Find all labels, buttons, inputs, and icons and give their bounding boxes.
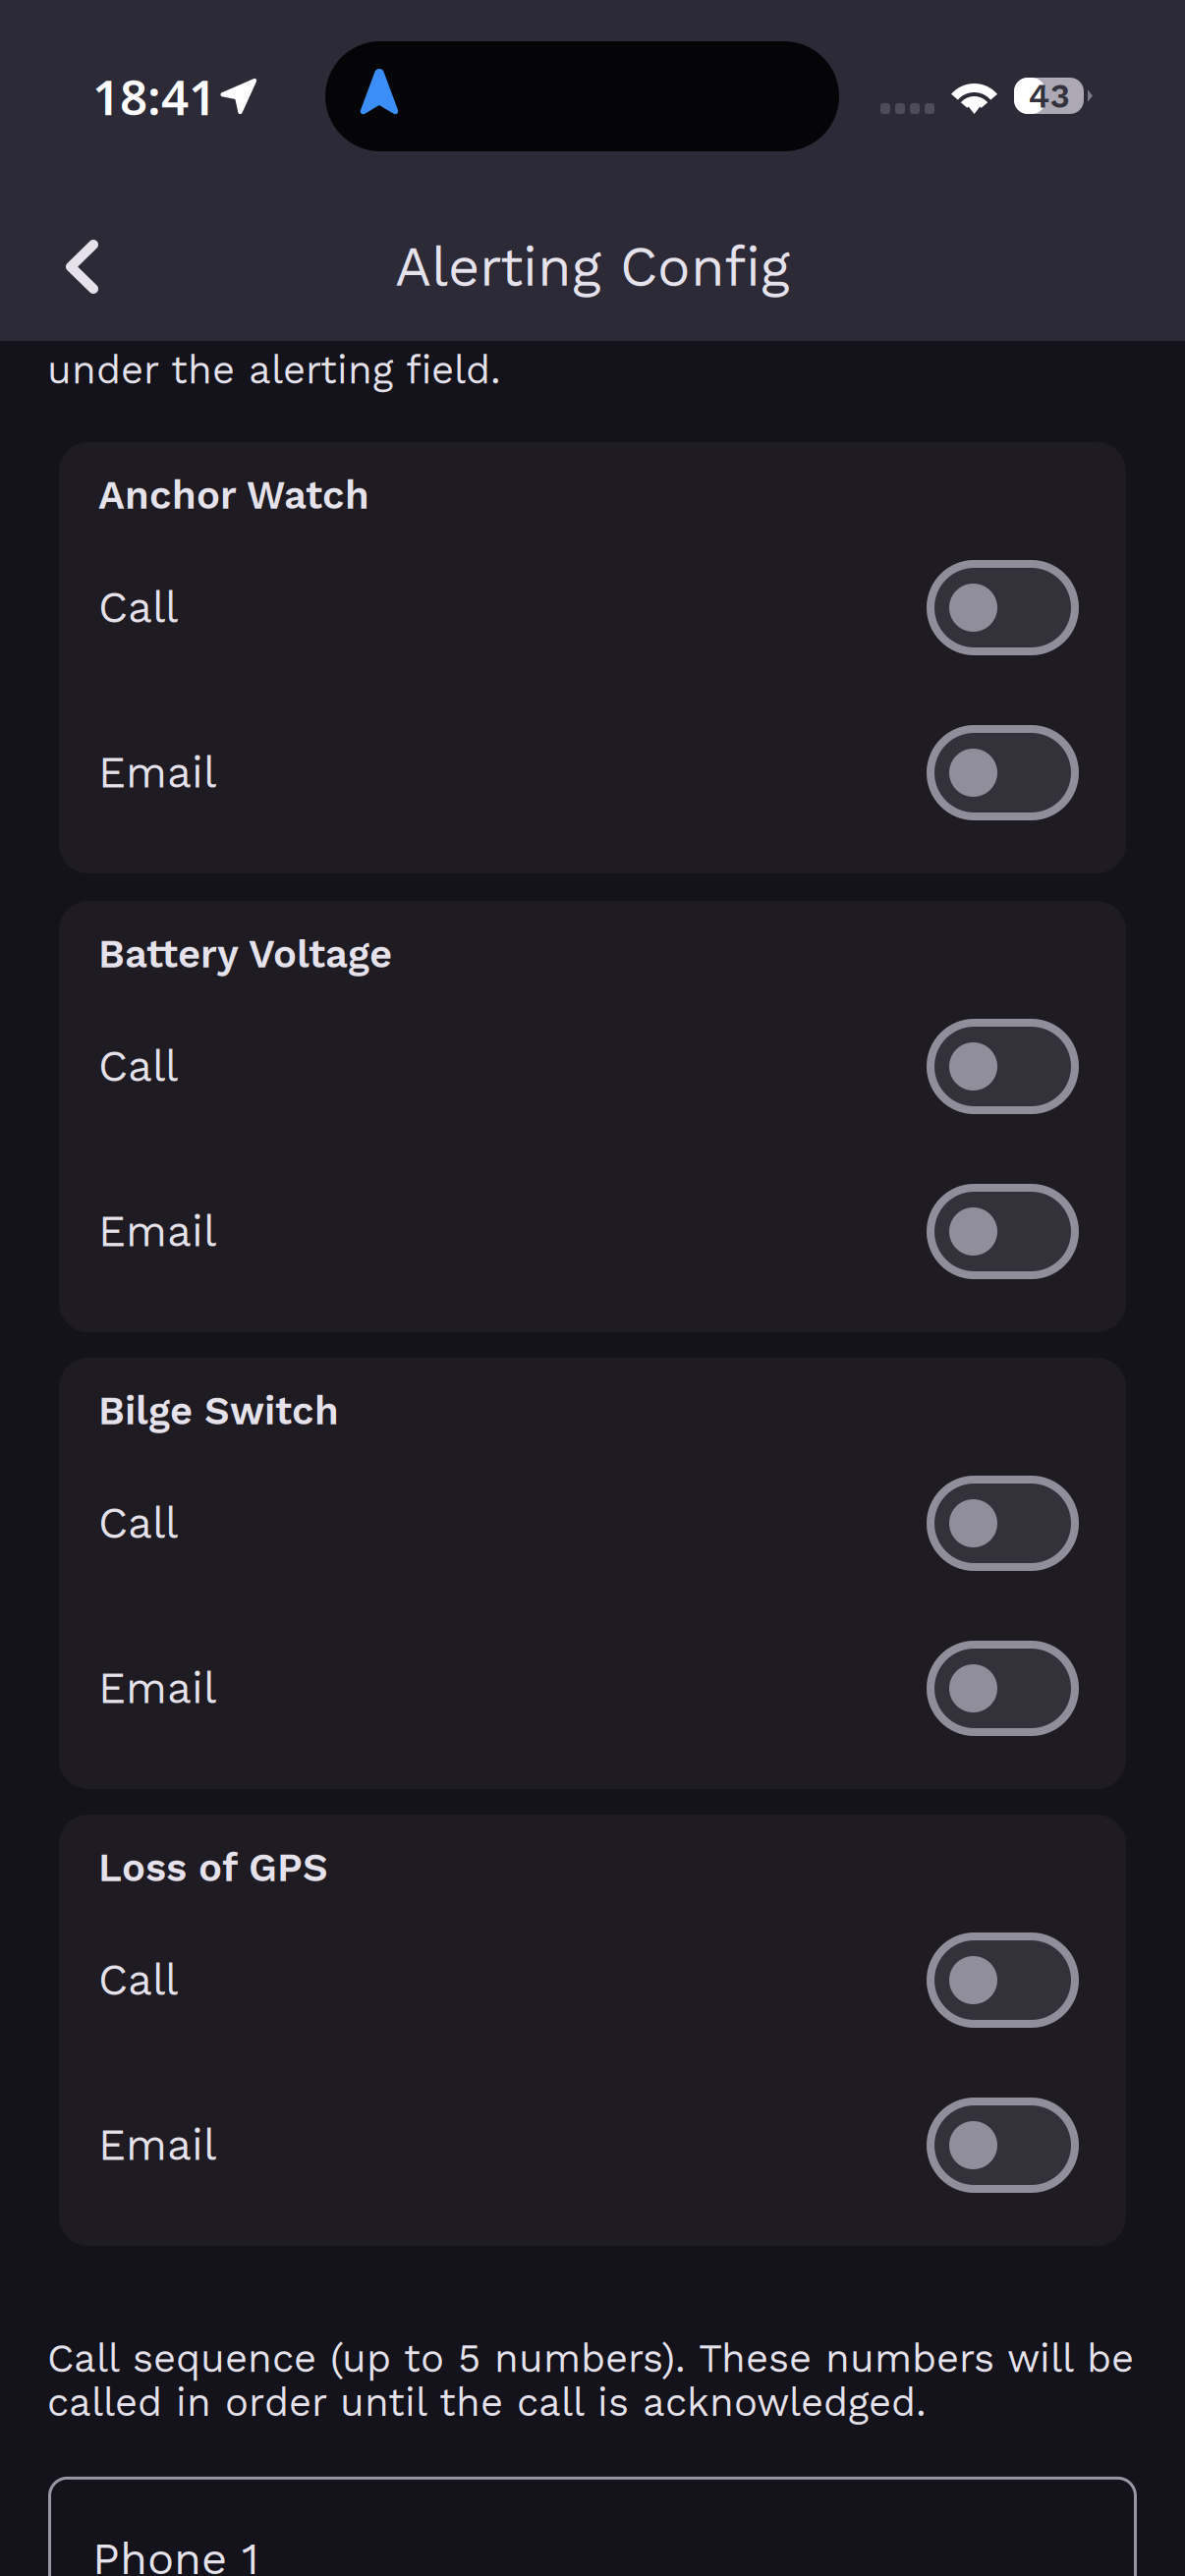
staticText: 18:41 bbox=[92, 64, 216, 128]
button[interactable]: Anchor Watch Call alerts, off bbox=[927, 560, 1079, 655]
staticText: called in order until the call is acknow… bbox=[47, 2379, 927, 2425]
staticText: Alerting Config bbox=[395, 235, 790, 299]
button[interactable]: Bilge Switch Email alerts, off bbox=[927, 1641, 1079, 1736]
staticText: Loss of GPS bbox=[98, 1845, 328, 1891]
staticText: Anchor Watch bbox=[98, 472, 369, 518]
staticText: Email bbox=[98, 747, 216, 798]
staticText: Call bbox=[98, 582, 178, 633]
staticText: Call bbox=[98, 1955, 178, 2005]
staticText: Call bbox=[98, 1041, 178, 1092]
button[interactable]: Back bbox=[0, 195, 138, 339]
staticText: Bilge Switch bbox=[98, 1388, 339, 1434]
button[interactable]: Loss of GPS Email alerts, off bbox=[927, 2098, 1079, 2193]
staticText: Phone 1 bbox=[92, 2533, 259, 2576]
button[interactable]: Loss of GPS Call alerts, off bbox=[927, 1932, 1079, 2028]
button[interactable]: Bilge Switch Call alerts, off bbox=[927, 1476, 1079, 1571]
button[interactable]: Battery Voltage Call alerts, off bbox=[927, 1019, 1079, 1114]
button[interactable]: Phone 1 bbox=[0, 2477, 1185, 2576]
button[interactable]: Battery Voltage Email alerts, off bbox=[927, 1184, 1079, 1279]
staticText: 43 bbox=[1028, 76, 1070, 116]
staticText: Email bbox=[98, 1206, 216, 1257]
staticText: under the alerting field. bbox=[47, 347, 501, 393]
staticText: Battery Voltage bbox=[98, 931, 392, 977]
staticText: Call bbox=[98, 1498, 178, 1549]
staticText: Call sequence (up to 5 numbers). These n… bbox=[47, 2335, 1134, 2381]
button[interactable]: Anchor Watch Email alerts, off bbox=[927, 725, 1079, 820]
staticText: Email bbox=[98, 2120, 216, 2171]
staticText: Email bbox=[98, 1663, 216, 1714]
